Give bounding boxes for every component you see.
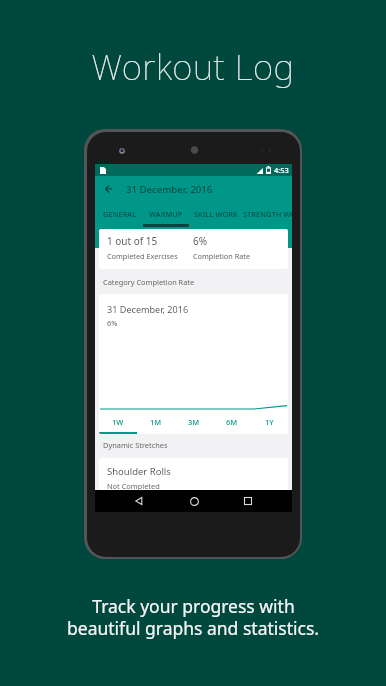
button[interactable]: WARMUP bbox=[143, 202, 189, 229]
button[interactable]: 1M bbox=[137, 410, 175, 434]
staticText: 31 December, 2016 bbox=[107, 303, 189, 315]
staticText: 1 out of 15 bbox=[107, 234, 158, 248]
button[interactable]: 6M bbox=[213, 410, 251, 434]
staticText: 6M bbox=[226, 417, 238, 427]
button[interactable]: Shoulder Rolls bbox=[99, 458, 288, 490]
button[interactable]: 1Y bbox=[251, 410, 288, 434]
staticText: 1M bbox=[150, 417, 162, 427]
button[interactable]: Home bbox=[184, 491, 204, 511]
staticText: Completion Rate bbox=[193, 251, 251, 261]
staticText: SKILL WORK bbox=[194, 209, 238, 219]
button[interactable]: Recents bbox=[238, 491, 258, 511]
staticText: 4:53 bbox=[274, 165, 289, 175]
staticText: Completed Exercises bbox=[107, 251, 178, 261]
staticText: beautiful graphs and statistics. bbox=[67, 616, 319, 640]
staticText: STRENGTH WORK bbox=[243, 209, 292, 219]
button[interactable]: 1W bbox=[99, 410, 137, 434]
staticText: Workout Log bbox=[0, 43, 386, 91]
button[interactable]: 3M bbox=[175, 410, 213, 434]
button[interactable]: Back bbox=[95, 176, 292, 202]
staticText: Not Completed bbox=[107, 481, 160, 490]
staticText: Track your progress with bbox=[92, 594, 295, 618]
staticText: Category Completion Rate bbox=[103, 277, 195, 287]
button[interactable]: STRENGTH WORK bbox=[243, 202, 292, 229]
staticText: 6% bbox=[107, 318, 118, 328]
staticText: 1W bbox=[112, 417, 124, 427]
button[interactable]: GENERAL bbox=[97, 202, 143, 229]
staticText: WARMUP bbox=[149, 209, 183, 219]
staticText: GENERAL bbox=[103, 209, 137, 219]
button[interactable]: 1 out of 15 bbox=[99, 229, 288, 269]
button[interactable]: Back bbox=[101, 181, 117, 197]
button[interactable]: Back bbox=[129, 491, 149, 511]
button[interactable]: SKILL WORK bbox=[189, 202, 243, 229]
staticText: 3M bbox=[188, 417, 200, 427]
staticText: 6% bbox=[193, 234, 208, 248]
staticText: 1Y bbox=[265, 417, 274, 427]
staticText: Shoulder Rolls bbox=[107, 465, 171, 478]
staticText: 31 December, 2016 bbox=[126, 183, 213, 196]
staticText: Dynamic Stretches bbox=[103, 440, 168, 450]
